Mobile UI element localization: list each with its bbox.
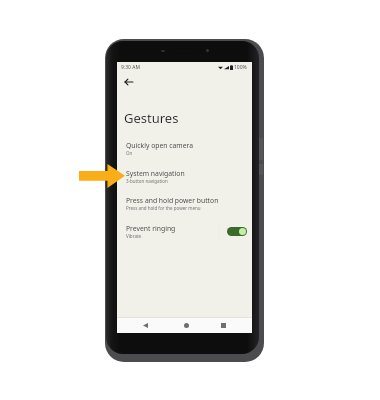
button[interactable]: Back [121,74,137,90]
button[interactable]: Prevent ringing toggle [227,227,247,236]
staticText: 100% [234,64,247,71]
button[interactable]: Recents [215,317,231,333]
staticText: Gestures [124,109,179,127]
button[interactable]: Quickly open camera [117,135,252,162]
button[interactable]: Back [137,317,153,333]
staticText: 9:30 AM [121,64,140,71]
button[interactable]: Prevent ringing [117,218,252,245]
staticText: Quickly open camera [126,141,193,150]
button[interactable]: Home [178,317,194,333]
staticText: Press and hold for the power menu [126,205,201,211]
staticText: Prevent ringing [126,224,176,233]
staticText: Vibrate [126,233,142,239]
staticText: On [126,150,133,156]
staticText: 3-button navigation [126,178,168,184]
button[interactable]: Press and hold power button [117,190,252,217]
staticText: System navigation [126,169,185,178]
staticText: Press and hold power button [126,196,219,205]
button[interactable]: System navigation [117,163,252,190]
